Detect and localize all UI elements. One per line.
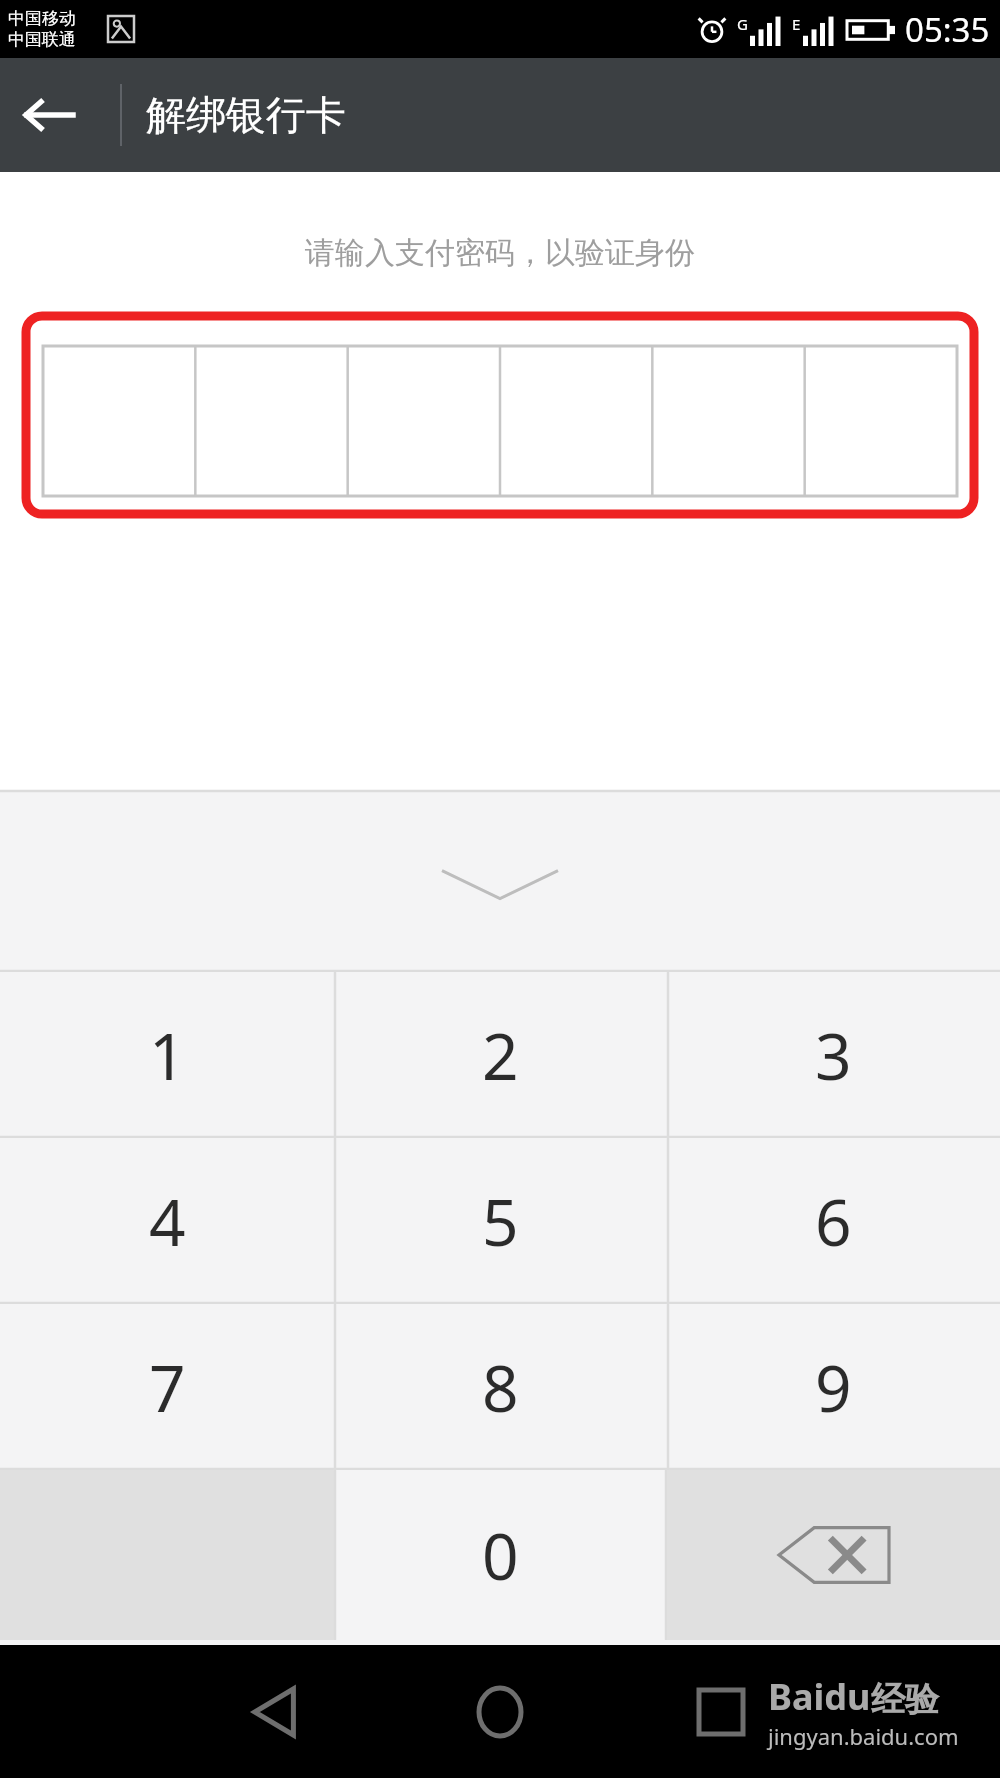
staticText: 3 [815, 1012, 852, 1099]
button[interactable] [43, 346, 957, 496]
staticText: 解绑银行卡 [146, 90, 346, 140]
staticText: Baidu [768, 1672, 871, 1721]
button[interactable]: 5 [334, 1138, 667, 1304]
button[interactable]: 3 [667, 972, 1000, 1138]
staticText: 0 [482, 1512, 519, 1599]
button[interactable]: Back [210, 1645, 340, 1778]
button[interactable]: 6 [667, 1138, 1000, 1304]
button[interactable]: 0 [334, 1470, 667, 1640]
staticText: 9 [815, 1344, 852, 1431]
button[interactable]: 2 [334, 972, 667, 1138]
button[interactable]: 9 [667, 1304, 1000, 1470]
button[interactable]: Hide keyboard [0, 790, 1000, 972]
button[interactable]: 8 [334, 1304, 667, 1470]
staticText: 5 [482, 1178, 519, 1265]
button[interactable]: Back [0, 58, 96, 172]
staticText: 中国移动 [8, 8, 76, 29]
button[interactable]: Home [435, 1645, 565, 1778]
staticText: E [792, 14, 801, 34]
staticText: 7 [149, 1344, 186, 1431]
staticText: 2 [482, 1012, 519, 1099]
staticText: 中国联通 [8, 29, 76, 50]
button[interactable]: 1 [0, 972, 334, 1138]
staticText: 请输入支付密码，以验证身份 [0, 234, 1000, 272]
button[interactable]: Recent apps [656, 1645, 786, 1778]
staticText: 8 [482, 1344, 519, 1431]
button[interactable]: 4 [0, 1138, 334, 1304]
staticText: G [737, 14, 748, 34]
staticText: jingyan.baidu.com [768, 1721, 959, 1751]
staticText: 1 [149, 1012, 186, 1099]
button[interactable]: 7 [0, 1304, 334, 1470]
staticText: 6 [815, 1178, 852, 1265]
staticText: 05:35 [905, 7, 990, 52]
staticText: 经验 [871, 1678, 939, 1721]
button[interactable]: Backspace [667, 1470, 1000, 1640]
staticText: 4 [149, 1178, 186, 1265]
